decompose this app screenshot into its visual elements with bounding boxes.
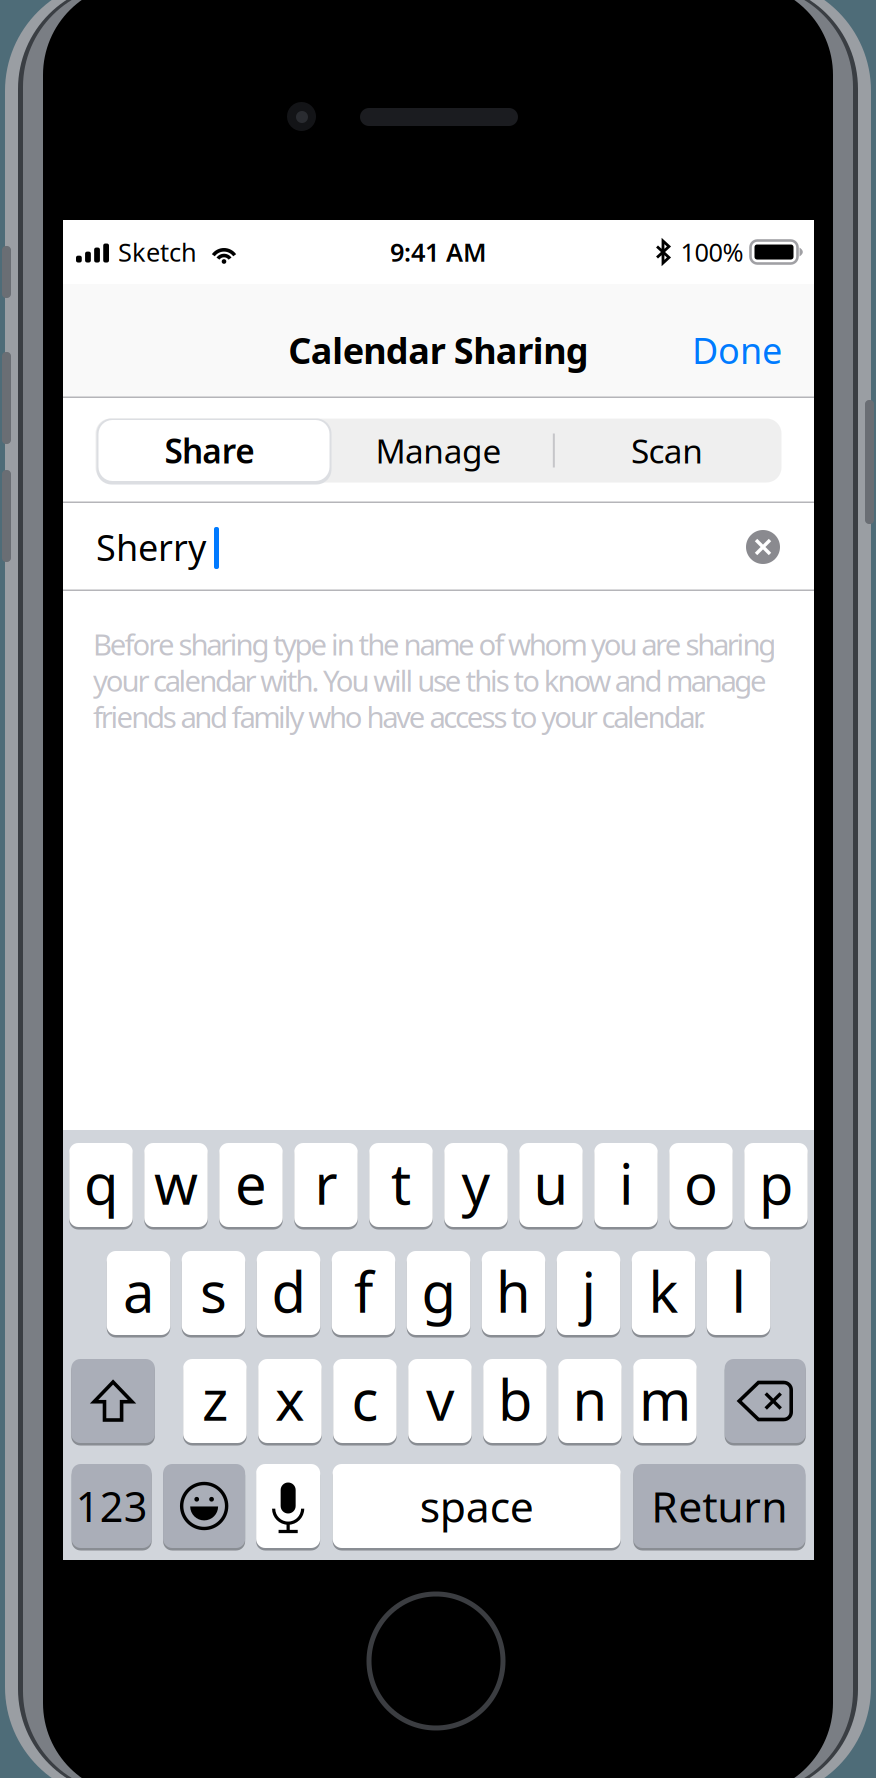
button[interactable]: r — [294, 1141, 358, 1228]
staticText: Sherry — [96, 523, 206, 571]
button[interactable]: f — [332, 1249, 395, 1336]
staticText: Done — [692, 326, 782, 374]
button[interactable]: b — [483, 1357, 547, 1444]
button[interactable]: p — [744, 1141, 808, 1228]
button[interactable]: d — [257, 1249, 320, 1336]
staticText: e — [235, 1146, 267, 1220]
staticText: v — [426, 1362, 454, 1436]
staticText: n — [572, 1362, 607, 1436]
staticText: space — [420, 1478, 534, 1534]
button[interactable]: m — [633, 1357, 697, 1444]
staticText: f — [354, 1254, 373, 1328]
button[interactable]: v — [408, 1357, 472, 1444]
staticText: Manage — [375, 428, 501, 473]
button[interactable]: Shift — [71, 1357, 155, 1444]
staticText: u — [533, 1146, 568, 1220]
button[interactable]: a — [107, 1249, 170, 1336]
button[interactable]: g — [407, 1249, 470, 1336]
staticText: p — [759, 1146, 793, 1220]
staticText: friends and family who have access to yo… — [93, 697, 706, 736]
button[interactable]: Delete — [725, 1357, 806, 1444]
button[interactable]: Numbers — [72, 1462, 152, 1549]
staticText: l — [731, 1254, 745, 1328]
staticText: m — [639, 1362, 691, 1436]
staticText: g — [421, 1254, 455, 1328]
button[interactable]: s — [182, 1249, 245, 1336]
button[interactable]: t — [369, 1141, 433, 1228]
staticText: Scan — [631, 428, 703, 473]
button[interactable]: Dictate — [256, 1462, 320, 1549]
staticText: Share — [164, 428, 255, 473]
staticText: a — [123, 1254, 154, 1328]
button[interactable]: y — [444, 1141, 508, 1228]
staticText: y — [461, 1146, 490, 1220]
staticText: b — [498, 1362, 532, 1436]
staticText: t — [391, 1146, 411, 1220]
button[interactable]: o — [669, 1141, 733, 1228]
staticText: s — [200, 1254, 227, 1328]
button[interactable]: Return — [633, 1462, 805, 1549]
staticText: 100% — [680, 235, 743, 269]
staticText: Before sharing type in the name of whom … — [93, 624, 776, 663]
staticText: k — [648, 1254, 678, 1328]
button[interactable]: n — [558, 1357, 622, 1444]
button[interactable]: j — [557, 1249, 620, 1336]
button[interactable]: Share — [95, 418, 324, 482]
button[interactable]: k — [632, 1249, 695, 1336]
staticText: w — [154, 1146, 198, 1220]
button[interactable]: q — [69, 1141, 133, 1228]
button[interactable]: z — [183, 1357, 247, 1444]
button[interactable]: x — [258, 1357, 322, 1444]
staticText: q — [84, 1146, 118, 1220]
button[interactable]: Manage — [324, 418, 553, 482]
staticText: Return — [651, 1478, 787, 1534]
button[interactable]: h — [482, 1249, 545, 1336]
button[interactable]: e — [219, 1141, 283, 1228]
staticText: h — [496, 1254, 531, 1328]
staticText: Sketch — [118, 235, 197, 269]
staticText: 123 — [76, 1479, 148, 1533]
button[interactable]: Clear text — [736, 517, 790, 577]
staticText: your calendar with. You will use this to… — [93, 661, 767, 700]
button[interactable]: l — [707, 1249, 770, 1336]
button[interactable]: Emoji — [163, 1462, 245, 1549]
button[interactable]: c — [333, 1357, 397, 1444]
staticText: c — [351, 1362, 378, 1436]
staticText: z — [202, 1362, 228, 1436]
button[interactable]: w — [144, 1141, 208, 1228]
staticText: j — [581, 1254, 595, 1328]
button[interactable]: u — [519, 1141, 583, 1228]
staticText: d — [271, 1254, 305, 1328]
staticText: r — [314, 1146, 337, 1220]
button[interactable]: space — [333, 1462, 621, 1549]
staticText: o — [684, 1146, 718, 1220]
staticText: x — [275, 1362, 305, 1436]
button[interactable]: Done — [680, 310, 794, 390]
staticText: i — [619, 1146, 633, 1220]
staticText: Calendar Sharing — [288, 326, 589, 374]
staticText: 9:41 AM — [390, 235, 487, 269]
button[interactable]: i — [594, 1141, 658, 1228]
button[interactable]: Scan — [553, 418, 781, 482]
